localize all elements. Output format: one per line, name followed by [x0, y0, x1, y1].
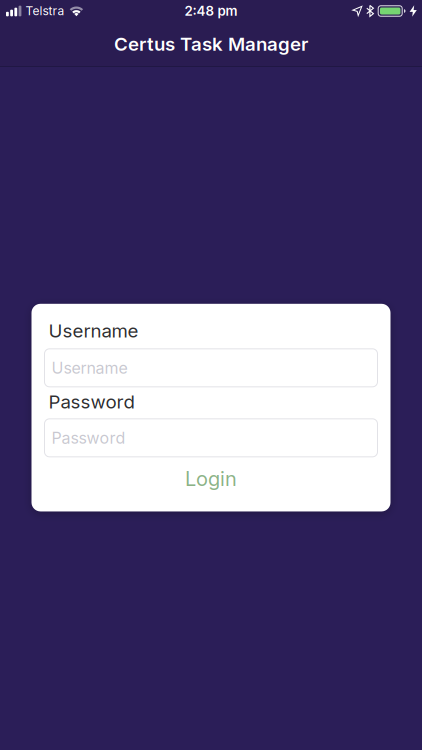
staticText: Password [48, 391, 134, 413]
button[interactable]: Username [44, 349, 377, 387]
button[interactable]: Password [44, 419, 377, 457]
staticText: Password [51, 428, 125, 447]
staticText: Certus Task Manager [114, 33, 308, 55]
staticText: Login [185, 467, 237, 490]
staticText: Username [48, 320, 138, 342]
staticText: Telstra [25, 4, 64, 18]
staticText: 2:48 pm [184, 3, 237, 19]
staticText: Username [51, 358, 127, 377]
button[interactable]: Login [44, 467, 377, 490]
